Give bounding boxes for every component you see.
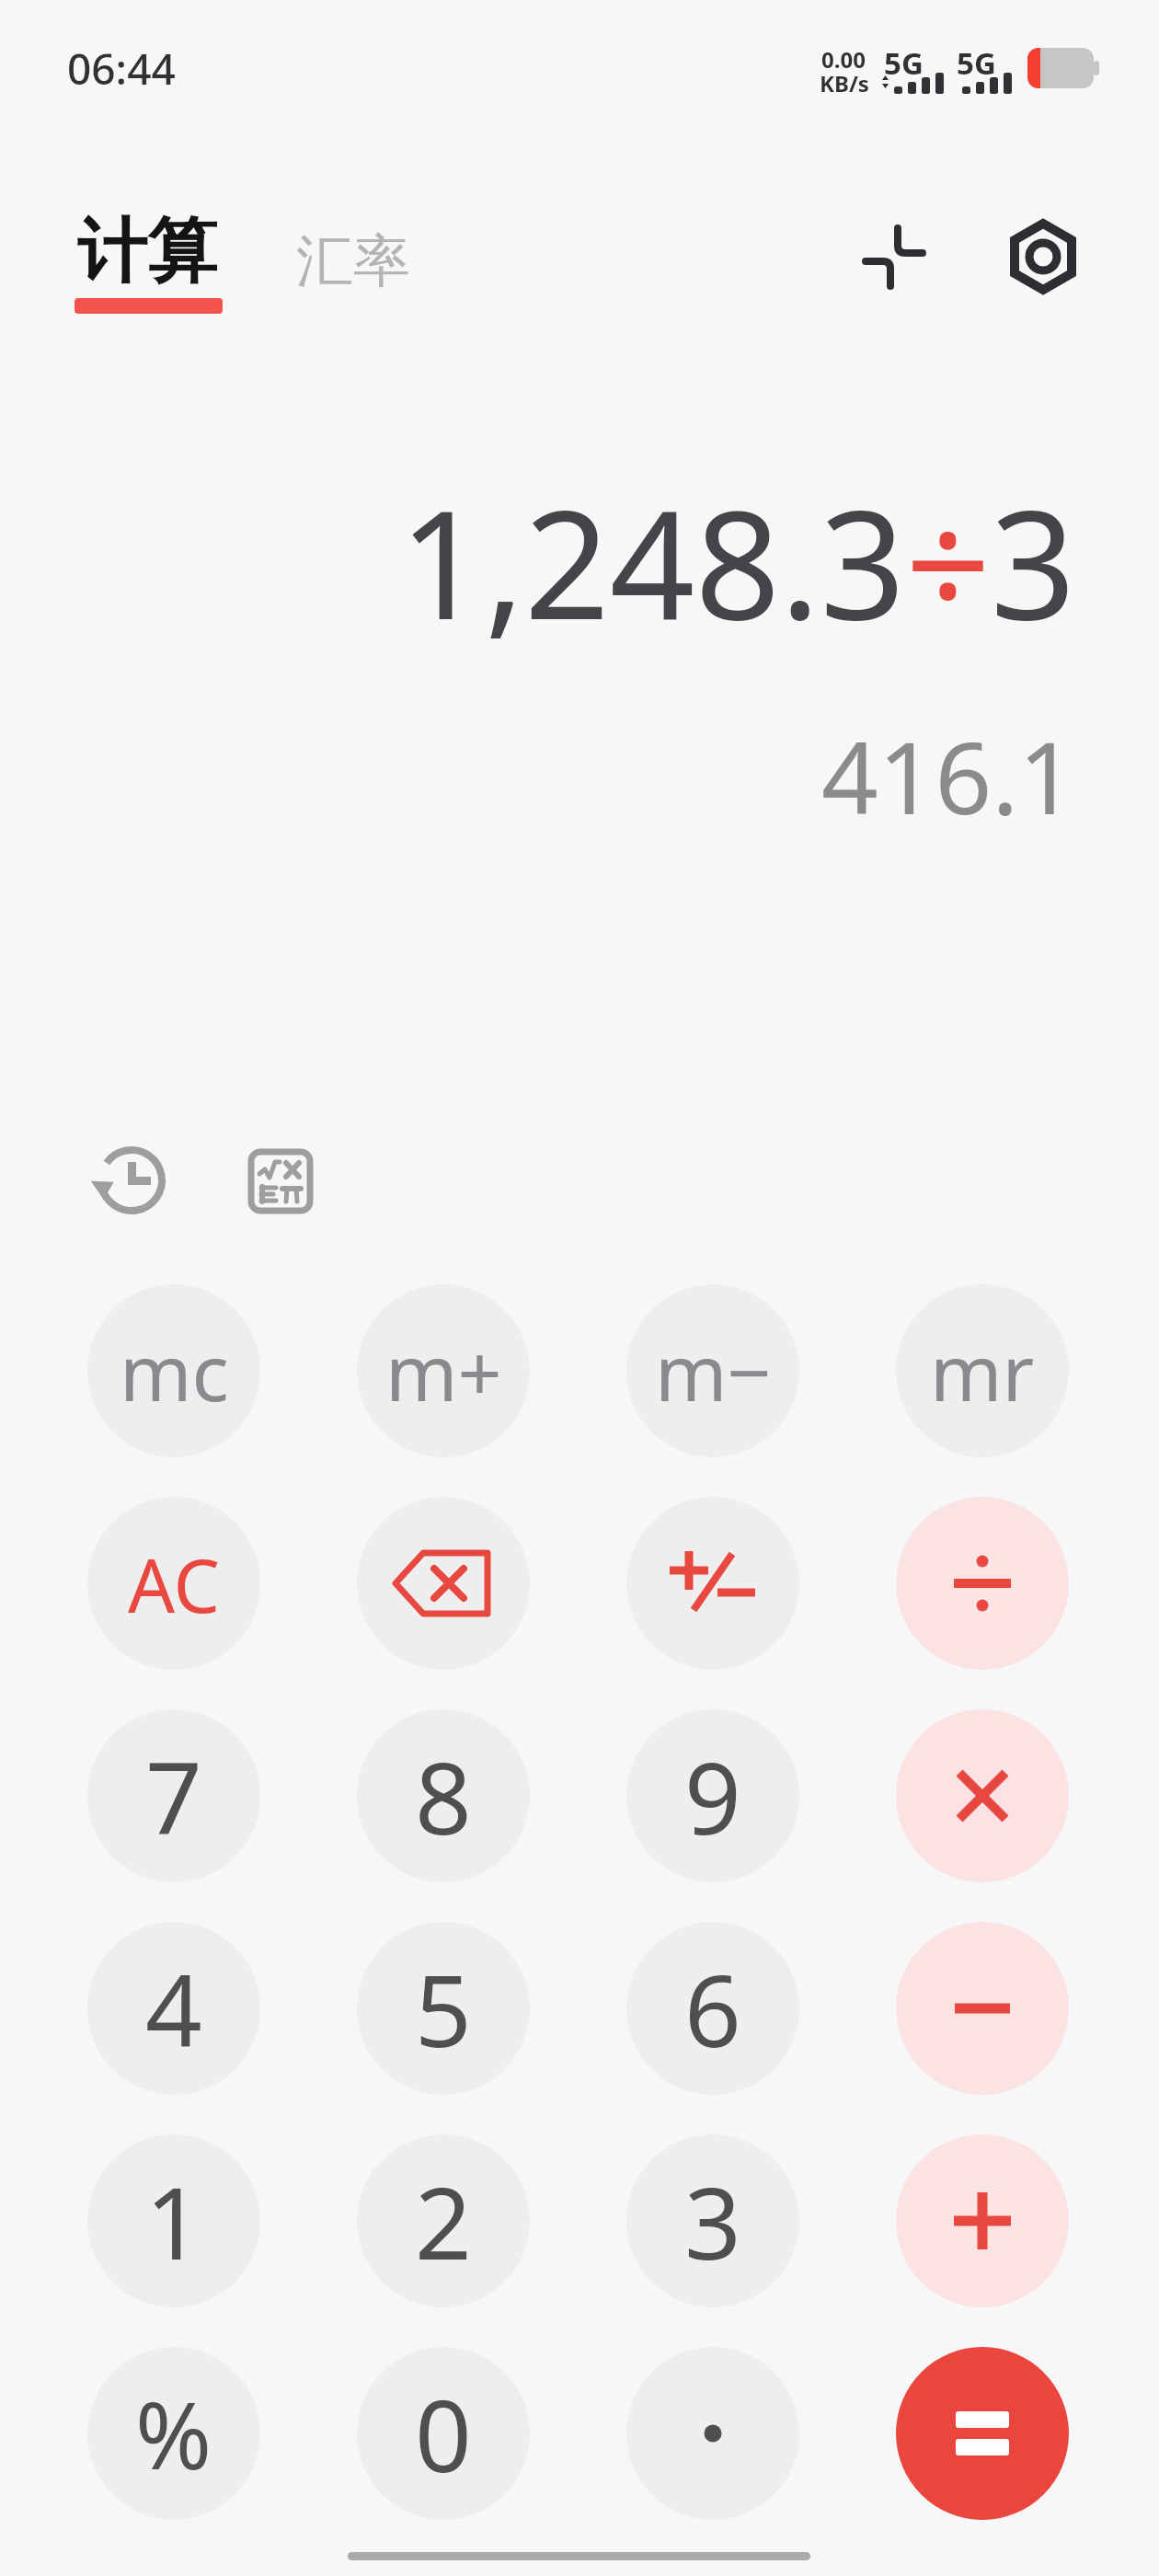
staticText: 9: [684, 1729, 741, 1864]
button[interactable]: 2: [357, 2134, 530, 2307]
button[interactable]: [357, 1497, 530, 1670]
staticText: 汇率: [296, 225, 410, 297]
staticText: 计算: [77, 208, 217, 296]
staticText: 0.00: [821, 44, 866, 75]
button[interactable]: mr: [896, 1284, 1069, 1457]
button[interactable]: [896, 2347, 1069, 2520]
button[interactable]: m−: [626, 1284, 799, 1457]
button[interactable]: [896, 1497, 1069, 1670]
button[interactable]: [626, 1497, 799, 1670]
staticText: mr: [930, 1318, 1035, 1423]
button[interactable]: [87, 1136, 176, 1225]
staticText: 5G: [884, 42, 924, 84]
button[interactable]: m+: [357, 1284, 530, 1457]
staticText: 4: [145, 1941, 202, 2076]
button[interactable]: 4: [87, 1922, 260, 2095]
button[interactable]: 7: [87, 1709, 260, 1882]
button[interactable]: mc: [87, 1284, 260, 1457]
button[interactable]: [896, 1709, 1069, 1882]
button[interactable]: 汇率: [296, 225, 410, 297]
button[interactable]: %: [87, 2347, 260, 2520]
button[interactable]: 6: [626, 1922, 799, 2095]
button[interactable]: 0: [357, 2347, 530, 2520]
staticText: m+: [385, 1318, 502, 1423]
staticText: 5G: [957, 42, 996, 84]
staticText: 1: [145, 2154, 202, 2289]
staticText: 5: [415, 1941, 472, 2076]
staticText: AC: [128, 1534, 221, 1634]
staticText: mc: [120, 1318, 229, 1423]
staticText: m−: [655, 1318, 772, 1423]
staticText: 0: [415, 2366, 472, 2501]
staticText: %: [135, 2371, 212, 2496]
button[interactable]: [896, 2134, 1069, 2307]
staticText: 1,248.3÷3: [399, 460, 1076, 639]
button[interactable]: [245, 1145, 316, 1217]
staticText: KB/s: [820, 68, 869, 98]
staticText: 416.1: [821, 708, 1076, 823]
button[interactable]: 9: [626, 1709, 799, 1882]
button[interactable]: 1: [87, 2134, 260, 2307]
button[interactable]: [1008, 221, 1078, 291]
staticText: 2: [415, 2154, 472, 2289]
staticText: 3: [684, 2154, 741, 2289]
staticText: 06:44: [67, 40, 176, 98]
button[interactable]: [851, 213, 938, 301]
staticText: 6: [684, 1941, 741, 2076]
button[interactable]: 3: [626, 2134, 799, 2307]
button[interactable]: AC: [87, 1497, 260, 1670]
button[interactable]: [626, 2347, 799, 2520]
staticText: 7: [145, 1729, 202, 1864]
button[interactable]: [896, 1922, 1069, 2095]
staticText: 8: [415, 1729, 472, 1864]
button[interactable]: 8: [357, 1709, 530, 1882]
button[interactable]: 计算: [77, 208, 217, 296]
button[interactable]: 5: [357, 1922, 530, 2095]
